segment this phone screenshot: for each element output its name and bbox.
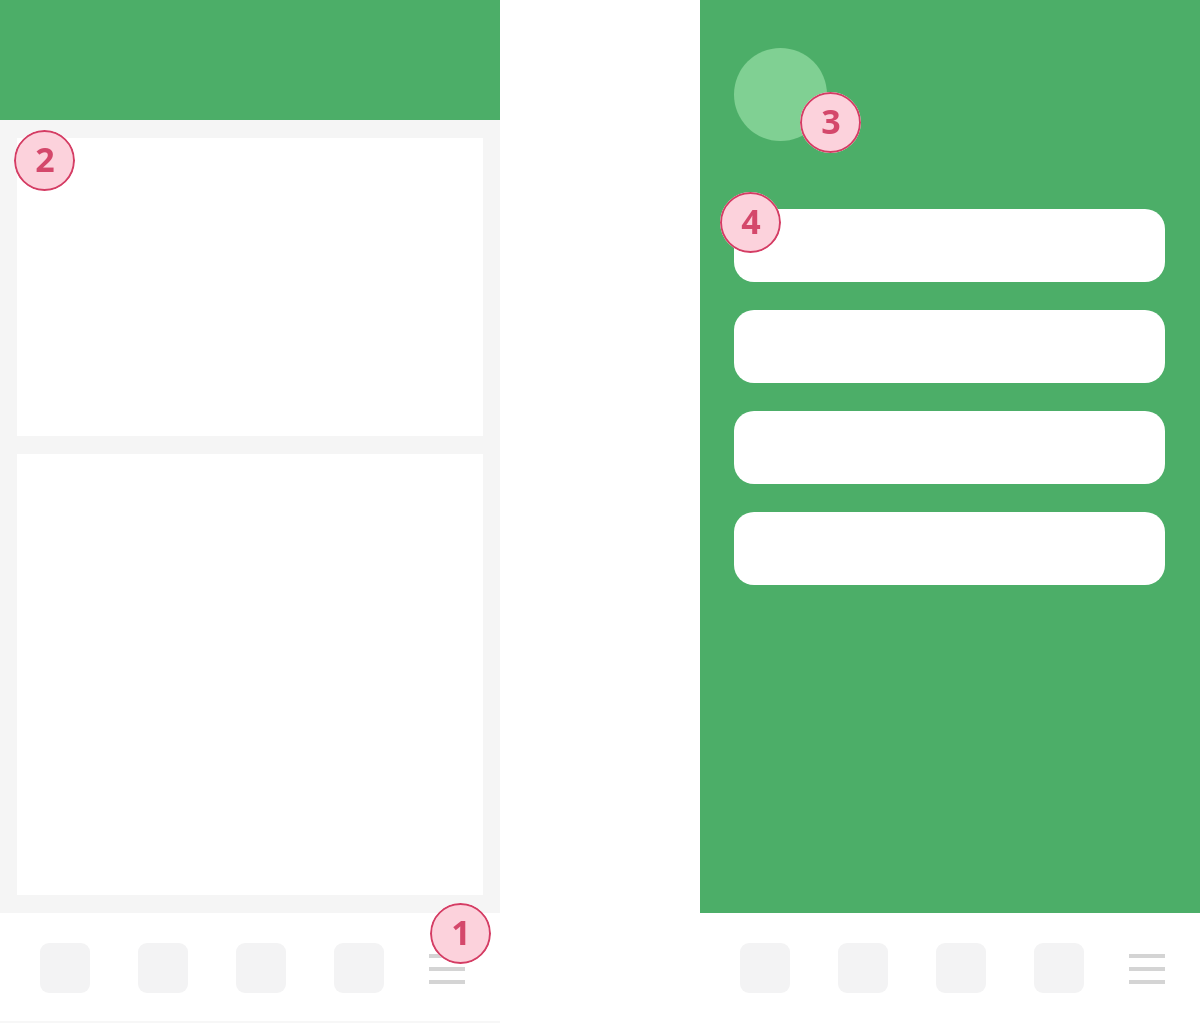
button[interactable]: Annotation 2 [14,130,75,191]
staticText: 4 [741,198,761,244]
button[interactable]: Drawer item 4 [734,512,1165,585]
button[interactable]: Card 1 [17,138,483,436]
staticText: 2 [35,136,55,182]
button[interactable]: Annotation 1 [430,903,491,964]
button[interactable]: More menu [429,954,465,984]
button[interactable]: Annotation 3 [800,92,861,153]
button[interactable]: Annotation 4 [720,192,781,253]
button[interactable]: More menu [1129,954,1165,984]
button[interactable]: Profile photo [734,48,827,141]
button[interactable]: Drawer item 2 [734,310,1165,383]
staticText: 3 [821,98,841,144]
button[interactable]: Drawer item 1 [734,209,1165,282]
button[interactable]: Drawer item 3 [734,411,1165,484]
staticText: 1 [451,909,471,955]
